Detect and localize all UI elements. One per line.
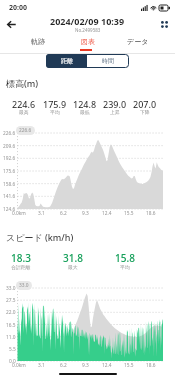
staticText: 141.6	[3, 193, 16, 200]
staticText: 最低	[80, 109, 90, 115]
staticText: 0.0km	[12, 210, 26, 217]
staticText: 0.0	[9, 358, 16, 365]
staticText: 18.3	[11, 251, 31, 265]
staticText: 合計距離	[11, 264, 31, 270]
staticText: 209.6	[3, 143, 16, 150]
staticText: 158.6	[3, 181, 16, 188]
staticText: 16.5	[6, 322, 16, 329]
staticText: No.2499583	[75, 27, 101, 33]
staticText: 最大	[68, 264, 78, 270]
staticText: 3.1	[38, 362, 45, 369]
staticText: 192.6	[3, 155, 16, 162]
staticText: 18.6	[146, 210, 156, 217]
button[interactable]: 軌跡	[12, 34, 63, 54]
staticText: 9.3	[82, 362, 89, 369]
button[interactable]: 時間	[87, 54, 129, 68]
staticText: 9.3	[82, 210, 89, 217]
staticText: 下降	[140, 109, 150, 115]
staticText: 軌跡	[31, 37, 45, 46]
staticText: 3.1	[38, 210, 45, 217]
button[interactable]: 距離	[46, 54, 87, 68]
staticText: 上昇	[110, 109, 120, 115]
staticText: 175.6	[3, 168, 16, 175]
staticText: 175.9	[43, 98, 67, 110]
staticText: 時間	[102, 57, 114, 65]
staticText: 18.6	[146, 362, 156, 369]
staticText: 226.6	[19, 127, 32, 134]
staticText: 224.6	[12, 98, 36, 110]
staticText: 226.6	[3, 130, 16, 137]
staticText: 33.0	[19, 282, 29, 289]
staticText: 6.2	[60, 362, 67, 369]
staticText: 11.0	[6, 334, 16, 341]
staticText: 31.8	[63, 251, 83, 265]
staticText: 距離	[61, 57, 73, 65]
staticText: 239.0	[103, 98, 127, 110]
staticText: 標高(m)	[6, 77, 39, 89]
staticText: 33.0	[6, 285, 16, 292]
staticText: 207.0	[133, 98, 157, 110]
staticText: 12.4	[102, 210, 112, 217]
staticText: 12.4	[102, 362, 112, 369]
button[interactable]: データ	[113, 34, 163, 54]
staticText: 27.5	[6, 297, 16, 304]
staticText: 最高	[19, 109, 29, 115]
staticText: データ	[127, 37, 149, 46]
staticText: 22.0	[6, 309, 16, 316]
staticText: 図表	[81, 37, 95, 46]
staticText: 124.6	[3, 206, 16, 213]
staticText: 20:00	[9, 3, 27, 13]
staticText: 124.8	[73, 98, 97, 110]
button[interactable]: Back	[0, 14, 22, 34]
staticText: 5.5	[9, 346, 16, 353]
staticText: 平均	[120, 264, 130, 270]
button[interactable]: More options	[153, 14, 175, 34]
button[interactable]: 図表	[63, 34, 113, 54]
staticText: 平均	[50, 109, 60, 115]
staticText: 15.5	[124, 210, 134, 217]
staticText: 0.0km	[12, 362, 26, 369]
staticText: スピード (km/h)	[6, 231, 74, 243]
staticText: 2024/02/09 10:39	[50, 15, 125, 27]
staticText: 6.2	[60, 210, 67, 217]
staticText: 15.5	[124, 362, 134, 369]
staticText: 15.8	[115, 251, 135, 265]
